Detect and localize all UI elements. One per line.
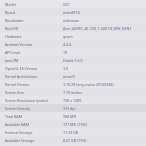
staticText: Acer_AV061_A1-724_1.028.18_WW_GEN1 (63, 26, 132, 31)
staticText: unknown (63, 18, 80, 23)
staticText: Screen Size (5, 90, 24, 95)
button[interactable]: Model (0, 0, 146, 8)
staticText: Dalvik 1.6.0 (63, 58, 83, 63)
staticText: Bootloader (5, 18, 24, 23)
staticText: 908 MB (63, 114, 76, 119)
staticText: Screen Density (5, 106, 30, 111)
staticText: 8.41 GB (73%) (63, 138, 87, 143)
button[interactable]: OpenGL ES Version (0, 64, 146, 72)
button[interactable]: Kernel Version (0, 80, 146, 88)
staticText: msm8916 (63, 10, 80, 15)
staticText: Model (5, 2, 16, 7)
staticText: qcom (63, 34, 73, 39)
staticText: Screen Resolution (pixels) (5, 98, 48, 103)
staticText: Available Storage (5, 138, 35, 143)
button[interactable]: Bootloader (0, 16, 146, 24)
staticText: Build ID (5, 26, 19, 31)
button[interactable]: Screen Size (0, 88, 146, 96)
staticText: 7.19 inches (63, 90, 83, 95)
staticText: Internal Storage (5, 130, 33, 135)
button[interactable]: API Level (0, 48, 146, 56)
staticText: API Level (5, 50, 21, 55)
staticText: 720 x 1280 (63, 98, 82, 103)
staticText: Available RAM (5, 122, 29, 127)
staticText: OpenGL ES Version (5, 66, 38, 71)
staticText: 4.4.4 (63, 42, 72, 47)
button[interactable]: Screen Density (0, 104, 146, 112)
staticText: 11.39 GB (63, 130, 79, 135)
staticText: G01 (63, 2, 70, 7)
button[interactable]: Java VM (0, 56, 146, 64)
button[interactable]: Total RAM (0, 112, 146, 120)
staticText: Java VM (5, 58, 19, 63)
staticText: 19 (63, 50, 68, 55)
staticText: Board (5, 10, 16, 15)
button[interactable]: Available RAM (0, 120, 146, 128)
button[interactable]: Screen Resolution (pixels) (0, 96, 146, 104)
button[interactable]: Hardware (0, 32, 146, 40)
button[interactable]: Internal Storage (0, 128, 146, 136)
staticText: Total RAM (5, 114, 22, 119)
staticText: 177 MB (19%) (63, 122, 88, 127)
staticText: Android Version (5, 42, 33, 47)
button[interactable]: Kernel Architecture (0, 72, 146, 80)
button[interactable]: Build ID (0, 24, 146, 32)
staticText: 3.10.28 (eng.cruise.20150284) (63, 82, 114, 87)
staticText: Hardware (5, 34, 22, 39)
staticText: Kernel Architecture (5, 74, 38, 79)
staticText: 3.0 (63, 66, 69, 71)
button[interactable]: Available Storage (0, 136, 146, 144)
button[interactable]: Board (0, 8, 146, 16)
button[interactable]: Android Version (0, 40, 146, 48)
staticText: Kernel Version (5, 82, 30, 87)
staticText: armv7l (63, 74, 75, 79)
staticText: 313 dpi (63, 106, 76, 111)
